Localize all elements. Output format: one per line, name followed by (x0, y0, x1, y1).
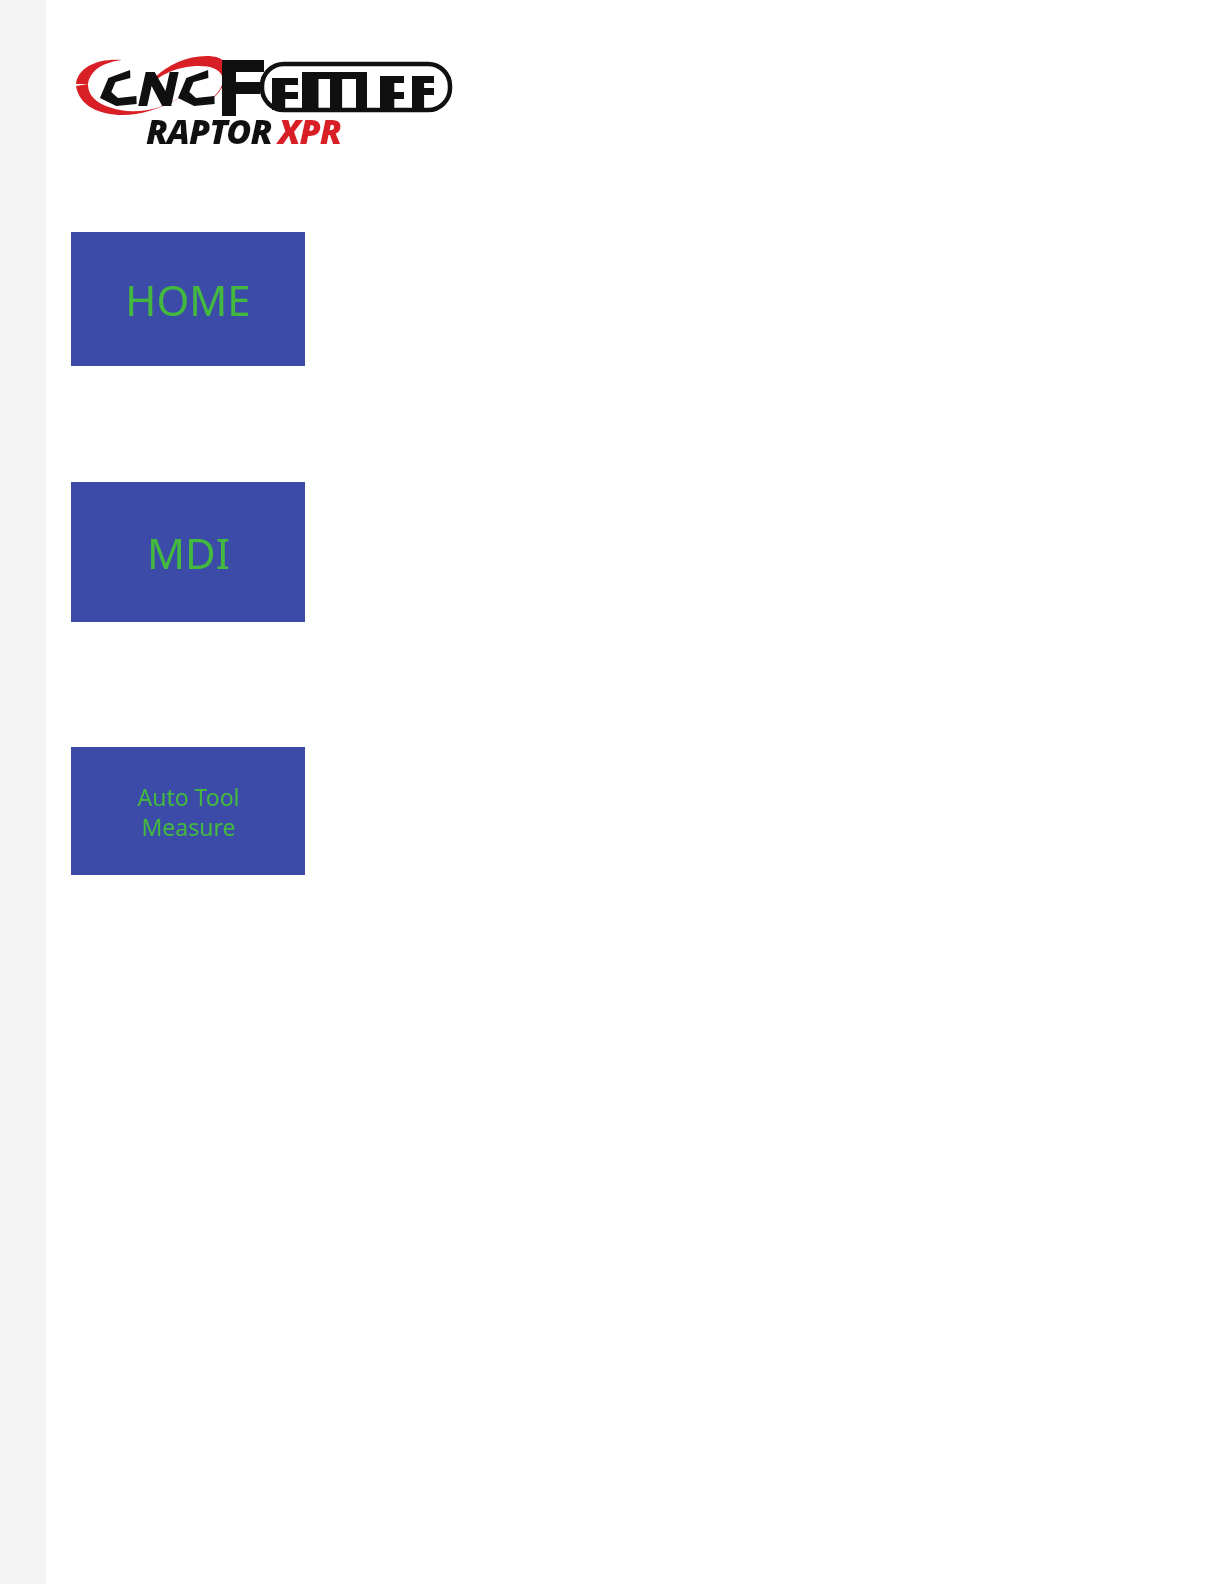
button[interactable]: HOME (71, 232, 305, 366)
staticText: Auto Tool Measure (137, 781, 240, 842)
staticText: HOME (125, 271, 251, 328)
staticText: RAPTOR (146, 108, 272, 154)
button[interactable]: MDI (71, 482, 305, 622)
button[interactable]: Auto Tool Measure (71, 747, 305, 875)
staticText: MDI (147, 524, 230, 581)
staticText: XPR (278, 108, 341, 154)
